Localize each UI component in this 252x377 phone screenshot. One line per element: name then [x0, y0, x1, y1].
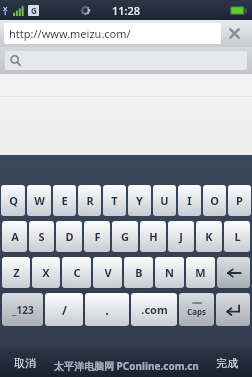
staticText: G [121, 229, 129, 244]
button[interactable]: J [168, 221, 194, 252]
staticText: 太平洋电脑网 PConline.com.cn [54, 359, 199, 373]
staticText: K [205, 229, 213, 244]
staticText: _123 [12, 303, 34, 317]
button[interactable]: / [45, 293, 83, 326]
staticText: A [11, 229, 19, 244]
staticText: C [73, 265, 81, 280]
button[interactable]: I [178, 185, 201, 216]
staticText: 完成 [216, 356, 238, 370]
button[interactable]: P [228, 185, 251, 216]
staticText: X [42, 265, 50, 280]
button[interactable]: S [29, 221, 54, 252]
button[interactable]: O [203, 185, 226, 216]
staticText: F [94, 229, 101, 244]
button[interactable]: F [84, 221, 110, 252]
button[interactable]: http://www.meizu.com/ [4, 23, 221, 44]
staticText: G [31, 5, 37, 16]
button[interactable]: N [155, 257, 184, 288]
staticText: N [165, 265, 174, 280]
staticText: . [105, 301, 109, 319]
button[interactable]: D [56, 221, 82, 252]
button[interactable]: 完成 [202, 348, 252, 377]
button[interactable]: V [93, 257, 122, 288]
button[interactable]: K [196, 221, 222, 252]
staticText: Q [9, 193, 18, 208]
button[interactable]: Enter [216, 293, 250, 326]
button[interactable]: G [112, 221, 138, 252]
staticText: .com [141, 302, 168, 317]
button[interactable]: Y [128, 185, 151, 216]
button[interactable]: X [32, 257, 60, 288]
button[interactable]: _123 [2, 293, 43, 326]
staticText: V [104, 265, 112, 280]
button[interactable]: W [27, 185, 51, 216]
button[interactable]: L [224, 221, 250, 252]
staticText: J [179, 229, 183, 244]
button[interactable]: E [53, 185, 76, 216]
button[interactable]: H [140, 221, 166, 252]
button[interactable]: Caps [179, 293, 214, 326]
staticText: S [38, 229, 45, 244]
staticText: Z [13, 265, 20, 280]
staticText: http://www.meizu.com/ [9, 26, 131, 41]
staticText: M [195, 265, 206, 280]
button[interactable]: .com [131, 293, 177, 326]
button[interactable]: Z [2, 257, 30, 288]
staticText: U [160, 193, 169, 208]
staticText: 11:28 [112, 3, 141, 18]
button[interactable] [5, 51, 247, 70]
staticText: I [187, 193, 192, 208]
button[interactable]: Q [1, 185, 25, 216]
button[interactable]: M [186, 257, 215, 288]
button[interactable]: Backspace [217, 257, 250, 288]
staticText: O [210, 193, 219, 208]
button[interactable]: R [78, 185, 101, 216]
staticText: W [34, 193, 45, 208]
button[interactable]: 取消 [0, 348, 50, 377]
staticText: E [61, 193, 68, 208]
staticText: T [111, 193, 118, 208]
staticText: 取消 [14, 356, 36, 370]
staticText: B [135, 265, 143, 280]
button[interactable]: Clear URL [221, 23, 248, 44]
button[interactable]: C [62, 257, 91, 288]
staticText: Caps [187, 306, 206, 317]
button[interactable]: B [124, 257, 153, 288]
staticText: Y [136, 193, 143, 208]
staticText: P [236, 193, 243, 208]
button[interactable]: . [85, 293, 129, 326]
staticText: D [65, 229, 74, 244]
staticText: H [149, 229, 158, 244]
button[interactable]: T [103, 185, 126, 216]
button[interactable]: A [2, 221, 27, 252]
staticText: / [62, 302, 67, 318]
button[interactable]: U [153, 185, 176, 216]
staticText: R [86, 193, 94, 208]
staticText: L [234, 229, 241, 244]
